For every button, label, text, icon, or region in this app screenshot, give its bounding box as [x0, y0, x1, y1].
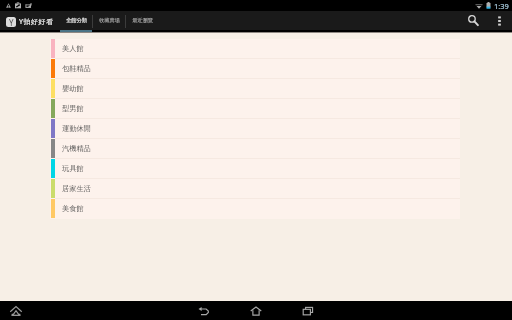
button[interactable]: Search	[462, 11, 484, 32]
button[interactable]: Home	[248, 303, 264, 319]
button[interactable]: 玩具館	[50, 159, 460, 179]
button[interactable]: 型男館	[50, 99, 460, 119]
staticText: 玩具館	[62, 164, 84, 173]
staticText: Y	[9, 17, 14, 27]
staticText: 運動休閒	[62, 124, 91, 133]
button[interactable]: 運動休閒	[50, 119, 460, 139]
staticText: 美人館	[62, 44, 84, 53]
button[interactable]: Menu	[9, 304, 23, 318]
button[interactable]: More options	[490, 11, 508, 32]
button[interactable]: Back	[196, 303, 212, 319]
button[interactable]: 嬰幼館	[50, 79, 460, 99]
staticText: 汽機精品	[62, 144, 91, 153]
staticText: Y拍好好看	[19, 17, 54, 27]
staticText: 包鞋精品	[62, 64, 91, 73]
button[interactable]: 收藏賣場	[93, 11, 125, 32]
staticText: 嬰幼館	[62, 84, 84, 93]
staticText: 1:39	[494, 1, 509, 11]
button[interactable]: Recent apps	[300, 303, 316, 319]
staticText: 收藏賣場	[99, 17, 120, 24]
button[interactable]: 全館分類	[60, 11, 92, 32]
button[interactable]: 包鞋精品	[50, 59, 460, 79]
button[interactable]: 汽機精品	[50, 139, 460, 159]
staticText: 居家生活	[62, 184, 91, 193]
button[interactable]: 居家生活	[50, 179, 460, 199]
staticText: 最近瀏覽	[132, 17, 153, 24]
button[interactable]: 美食館	[50, 199, 460, 219]
staticText: 型男館	[62, 104, 84, 113]
button[interactable]: 最近瀏覽	[126, 11, 158, 32]
staticText: 美食館	[62, 204, 84, 213]
button[interactable]: 美人館	[50, 39, 460, 59]
staticText: 全館分類	[66, 17, 87, 24]
